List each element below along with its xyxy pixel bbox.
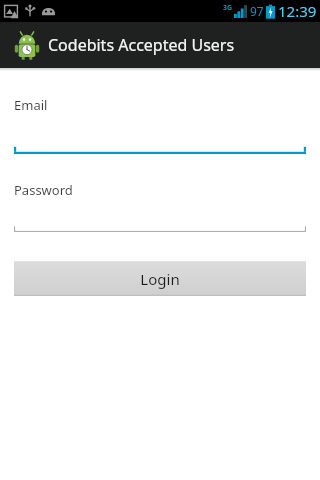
button[interactable]: Login <box>14 261 306 296</box>
staticText: 12:39 <box>278 1 317 21</box>
staticText: Password <box>14 181 73 199</box>
staticText: 3G <box>223 3 233 13</box>
staticText: Email <box>14 96 48 114</box>
staticText: 97 <box>250 3 264 19</box>
staticText: Codebits Accepted Users <box>48 34 235 56</box>
button[interactable]: Email input <box>14 114 306 154</box>
button[interactable]: Password input <box>14 199 306 232</box>
staticText: Login <box>140 269 180 289</box>
